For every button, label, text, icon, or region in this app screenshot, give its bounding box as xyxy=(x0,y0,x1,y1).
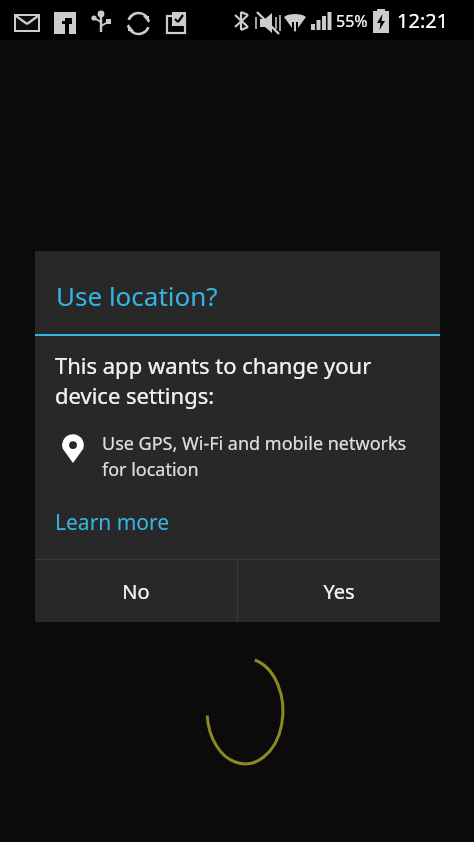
button[interactable]: Learn more xyxy=(35,506,190,541)
staticText: 55% xyxy=(336,10,368,32)
staticText: Use location? xyxy=(56,278,218,313)
button[interactable]: Yes xyxy=(238,560,440,622)
staticText: 12:21 xyxy=(397,7,449,34)
staticText: Yes xyxy=(323,578,355,605)
staticText: This app wants to change your device set… xyxy=(55,350,372,410)
staticText: Learn more xyxy=(55,508,170,537)
staticText: No xyxy=(122,578,150,605)
button[interactable]: No xyxy=(35,560,237,622)
staticText: Use GPS, Wi-Fi and mobile networks for l… xyxy=(102,431,407,482)
